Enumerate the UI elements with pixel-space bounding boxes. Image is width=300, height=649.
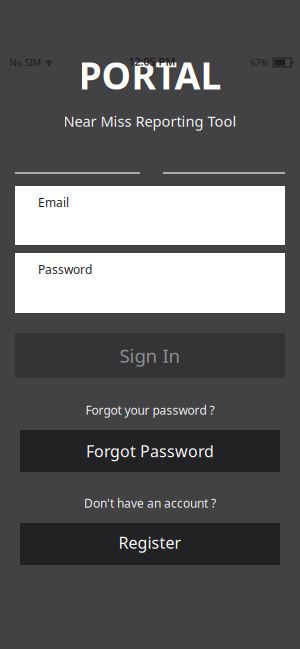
staticText: Forgot Password xyxy=(86,440,214,462)
button[interactable]: Sign In xyxy=(15,333,285,378)
staticText: Register xyxy=(118,532,181,553)
staticText: PORTAL xyxy=(78,50,221,100)
button[interactable]: Register xyxy=(20,523,280,565)
button[interactable]: Forgot Password xyxy=(20,430,280,472)
staticText: Email xyxy=(38,194,69,210)
button[interactable]: Email xyxy=(15,186,285,245)
staticText: 12:05 PM xyxy=(128,54,175,69)
staticText: Forgot your password ? xyxy=(85,402,214,418)
staticText: Password xyxy=(38,261,92,277)
button[interactable]: Password xyxy=(15,253,285,313)
staticText: No SIM xyxy=(9,56,40,69)
staticText: 67% xyxy=(250,56,268,69)
staticText: Don't have an account ? xyxy=(84,495,216,511)
staticText: Sign In xyxy=(119,343,180,368)
staticText: Near Miss Reporting Tool xyxy=(63,111,236,131)
